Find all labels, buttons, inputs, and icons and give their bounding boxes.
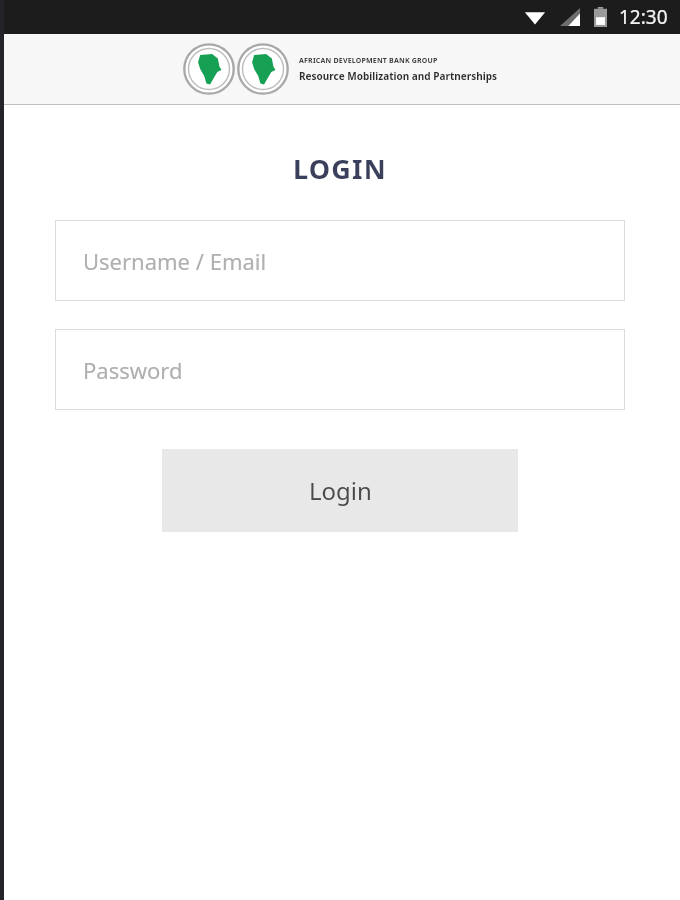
staticText: Username / Email <box>83 246 267 276</box>
other: Wi-Fi <box>524 8 546 26</box>
button[interactable]: Username / Email <box>55 220 625 301</box>
staticText: 12:30 <box>619 4 668 30</box>
other: Signal <box>560 8 580 26</box>
staticText: LOGIN <box>0 150 680 187</box>
staticText: AFRICAN DEVELOPMENT BANK GROUP <box>299 56 438 66</box>
staticText: Login <box>309 474 372 507</box>
other: Battery <box>594 7 607 27</box>
staticText: Password <box>83 355 183 385</box>
button[interactable]: Login <box>162 449 518 532</box>
button[interactable]: Password <box>55 329 625 410</box>
staticText: Resource Mobilization and Partnerships <box>299 69 498 83</box>
